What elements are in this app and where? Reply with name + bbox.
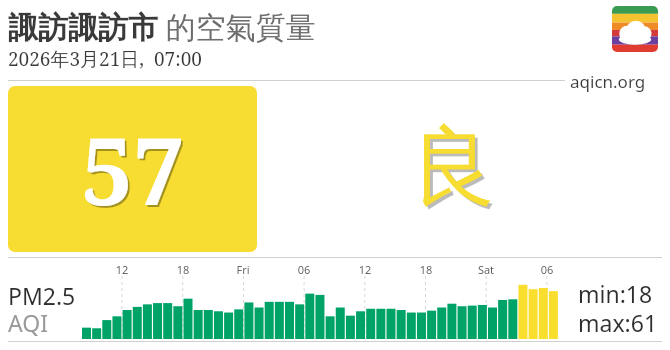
- staticText: 57: [81, 107, 185, 232]
- button[interactable]: 諏訪諏訪市: [8, 6, 316, 47]
- staticText: PM2.5: [8, 280, 76, 311]
- staticText: max:61: [578, 307, 658, 338]
- staticText: Fri: [229, 262, 257, 277]
- staticText: aqicn.org: [570, 70, 646, 93]
- staticText: 的空氣質量: [158, 6, 316, 47]
- staticText: 18: [169, 262, 197, 277]
- button[interactable]: [0, 258, 670, 341]
- staticText: 12: [351, 262, 379, 277]
- staticText: min:18: [578, 278, 653, 309]
- staticText: 良: [410, 113, 496, 221]
- button[interactable]: 57: [8, 86, 257, 252]
- staticText: 12: [108, 262, 136, 277]
- staticText: 18: [412, 262, 440, 277]
- staticText: 諏訪諏訪市: [8, 9, 158, 47]
- button[interactable]: aqicn.org logo: [612, 6, 658, 52]
- staticText: AQI: [8, 307, 48, 338]
- staticText: 良: [413, 116, 499, 224]
- staticText: 2026年3月21日, 07:00: [8, 46, 202, 72]
- staticText: Sat: [472, 262, 500, 277]
- staticText: 06: [290, 262, 318, 277]
- staticText: 57: [83, 109, 187, 234]
- staticText: 06: [533, 262, 561, 277]
